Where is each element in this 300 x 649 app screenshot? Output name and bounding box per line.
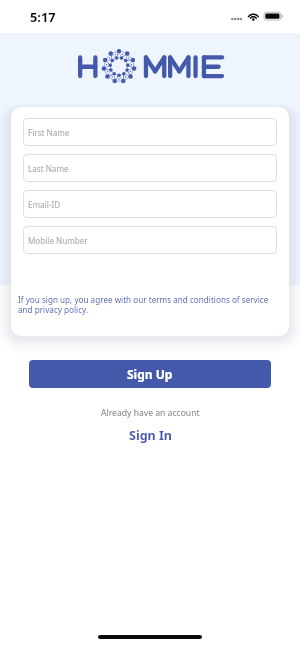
staticText: If you sign up, you agree with our terms…: [18, 294, 282, 315]
staticText: Email-ID: [28, 199, 61, 210]
staticText: 5:17: [30, 8, 56, 25]
button[interactable]: First Name: [23, 118, 277, 146]
staticText: Already have an account: [101, 407, 200, 419]
staticText: Last Name: [28, 163, 69, 174]
button[interactable]: Last Name: [23, 154, 277, 182]
button[interactable]: Email-ID: [23, 190, 277, 218]
button[interactable]: Mobile Number: [23, 226, 277, 254]
staticText: First Name: [28, 127, 70, 138]
staticText: Mobile Number: [28, 235, 88, 246]
button[interactable]: Sign Up: [29, 360, 271, 388]
staticText: Sign In: [129, 427, 172, 444]
button[interactable]: Sign In: [121, 424, 180, 447]
staticText: Sign Up: [127, 366, 173, 382]
